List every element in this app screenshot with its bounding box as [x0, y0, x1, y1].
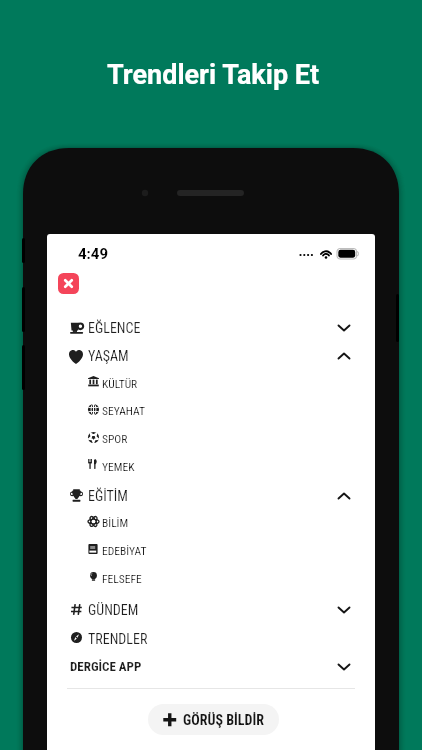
- staticText: SPOR: [102, 432, 128, 445]
- button[interactable]: TRENDLER: [47, 625, 375, 652]
- staticText: YEMEK: [102, 460, 135, 473]
- button[interactable]: FELSEFE: [47, 565, 375, 592]
- staticText: GÖRÜŞ BİLDİR: [183, 712, 264, 728]
- button[interactable]: SEYAHAT: [47, 397, 375, 424]
- staticText: GÜNDEM: [88, 602, 139, 618]
- staticText: YAŞAM: [88, 348, 129, 364]
- staticText: BİLİM: [102, 516, 129, 529]
- button[interactable]: Close: [58, 273, 79, 294]
- button[interactable]: DERGİCE APP: [47, 653, 375, 680]
- staticText: FELSEFE: [102, 572, 142, 585]
- button[interactable]: YEMEK: [47, 453, 375, 480]
- staticText: SEYAHAT: [102, 404, 145, 417]
- button[interactable]: EĞİTİM: [47, 482, 375, 509]
- button[interactable]: GÖRÜŞ BİLDİR: [148, 704, 279, 735]
- button[interactable]: GÜNDEM: [47, 596, 375, 623]
- staticText: EĞİTİM: [88, 488, 128, 504]
- button[interactable]: EĞLENCE: [47, 314, 375, 341]
- staticText: EĞLENCE: [88, 320, 141, 336]
- staticText: KÜLTÜR: [102, 377, 138, 390]
- button[interactable]: BİLİM: [47, 509, 375, 536]
- staticText: EDEBİYAT: [102, 544, 147, 557]
- staticText: DERGİCE APP: [70, 659, 142, 674]
- staticText: TRENDLER: [88, 631, 148, 647]
- button[interactable]: KÜLTÜR: [47, 370, 375, 397]
- button[interactable]: SPOR: [47, 425, 375, 452]
- button[interactable]: EDEBİYAT: [47, 537, 375, 564]
- staticText: 4:49: [78, 245, 109, 263]
- staticText: Trendleri Takip Et: [107, 59, 320, 91]
- button[interactable]: YAŞAM: [47, 342, 375, 369]
